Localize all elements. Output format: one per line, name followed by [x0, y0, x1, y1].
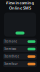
staticText: Item three	[4, 55, 19, 58]
staticText: Item two	[4, 47, 16, 51]
staticText: Item four	[4, 62, 17, 66]
staticText: Online SMS	[9, 5, 31, 10]
staticText: View incoming	[5, 0, 34, 5]
staticText: Item one	[4, 40, 17, 43]
